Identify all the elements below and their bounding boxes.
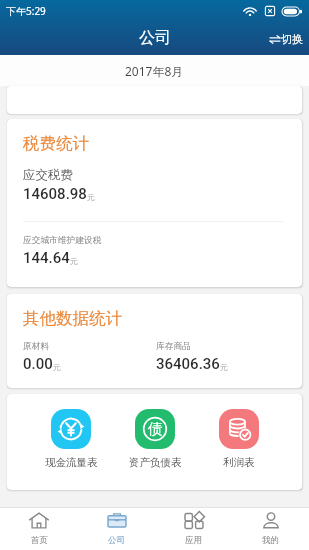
other: Apps (184, 512, 204, 529)
button[interactable]: Home (0, 508, 78, 550)
button[interactable]: Apps (155, 508, 232, 550)
staticText: 税费统计 (23, 133, 89, 154)
staticText: 36406.36 (156, 355, 220, 373)
staticText: 元 (220, 362, 228, 372)
staticText: 下午5:29 (6, 4, 46, 18)
staticText: 应交城市维护建设税 (23, 235, 102, 246)
other: Profile (261, 512, 281, 529)
staticText: 14608.98 (23, 185, 87, 203)
staticText: 应交税费 (23, 167, 73, 183)
other: Home (29, 512, 49, 529)
button[interactable]: Profile (232, 508, 309, 550)
other: Company (107, 512, 127, 529)
staticText: 其他数据统计 (23, 308, 122, 329)
staticText: 公司 (108, 535, 125, 546)
staticText: 公司 (139, 28, 171, 48)
button[interactable]: 现金流量表 (29, 394, 113, 490)
staticText: 144.64 (23, 249, 70, 267)
staticText: 首页 (31, 535, 48, 546)
staticText: 元 (70, 256, 78, 266)
staticText: 原材料 (23, 341, 50, 352)
button[interactable]: 利润表 (197, 394, 281, 490)
staticText: 利润表 (223, 456, 255, 469)
staticText: 应用 (185, 535, 202, 546)
button[interactable]: Company (78, 508, 155, 550)
button[interactable]: 切换 (270, 32, 309, 46)
staticText: 元 (87, 192, 95, 202)
staticText: 债 (148, 420, 163, 439)
staticText: 我的 (262, 535, 279, 546)
button[interactable]: 债 (113, 394, 197, 490)
staticText: 现金流量表 (45, 456, 98, 469)
staticText: 资产负债表 (129, 456, 182, 469)
staticText: 0.00 (23, 355, 53, 373)
staticText: 2017年8月 (125, 63, 184, 79)
staticText: 库存商品 (156, 341, 191, 352)
staticText: 元 (53, 362, 61, 372)
staticText: 切换 (281, 32, 303, 46)
